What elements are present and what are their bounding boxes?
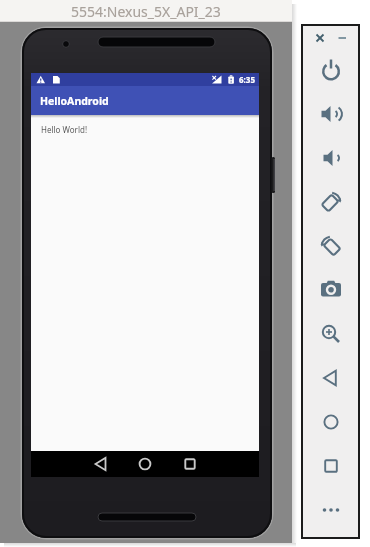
button[interactable]: [107, 451, 183, 477]
button[interactable]: [316, 99, 346, 129]
button[interactable]: 5554:Nexus_5X_API_23: [0, 0, 292, 22]
button[interactable]: [316, 319, 346, 349]
button[interactable]: [183, 451, 259, 477]
staticText: 6:35: [239, 74, 255, 85]
button[interactable]: Hello World!: [41, 124, 88, 135]
button[interactable]: [316, 231, 346, 261]
button[interactable]: [312, 30, 328, 46]
button[interactable]: [316, 495, 346, 525]
button[interactable]: [31, 451, 107, 477]
button[interactable]: [316, 143, 346, 173]
button[interactable]: HelloAndroid: [31, 86, 259, 115]
button[interactable]: [316, 275, 346, 305]
button[interactable]: [334, 30, 350, 46]
button[interactable]: [316, 451, 346, 481]
button[interactable]: [316, 187, 346, 217]
button[interactable]: [316, 407, 346, 437]
button[interactable]: [316, 55, 346, 85]
staticText: 5554:Nexus_5X_API_23: [71, 2, 221, 21]
staticText: HelloAndroid: [40, 94, 109, 108]
button[interactable]: [316, 363, 346, 393]
